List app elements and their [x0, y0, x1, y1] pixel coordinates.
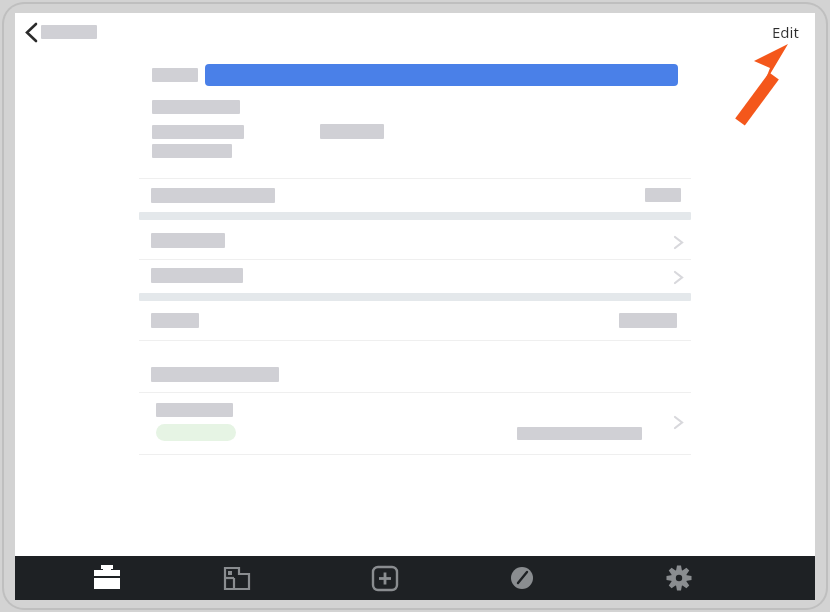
button[interactable]: Plans [215, 556, 259, 600]
button[interactable]: Add [363, 556, 407, 600]
button[interactable]: Edit [772, 22, 808, 44]
staticText: Edit [772, 22, 799, 42]
button[interactable]: Back [20, 18, 46, 46]
button[interactable]: List item [139, 393, 691, 454]
button[interactable]: Settings [657, 556, 701, 600]
button[interactable]: Projects [85, 556, 129, 600]
button[interactable]: Progress [500, 556, 544, 600]
button[interactable]: List item [139, 260, 691, 293]
button[interactable]: List item [139, 226, 691, 259]
